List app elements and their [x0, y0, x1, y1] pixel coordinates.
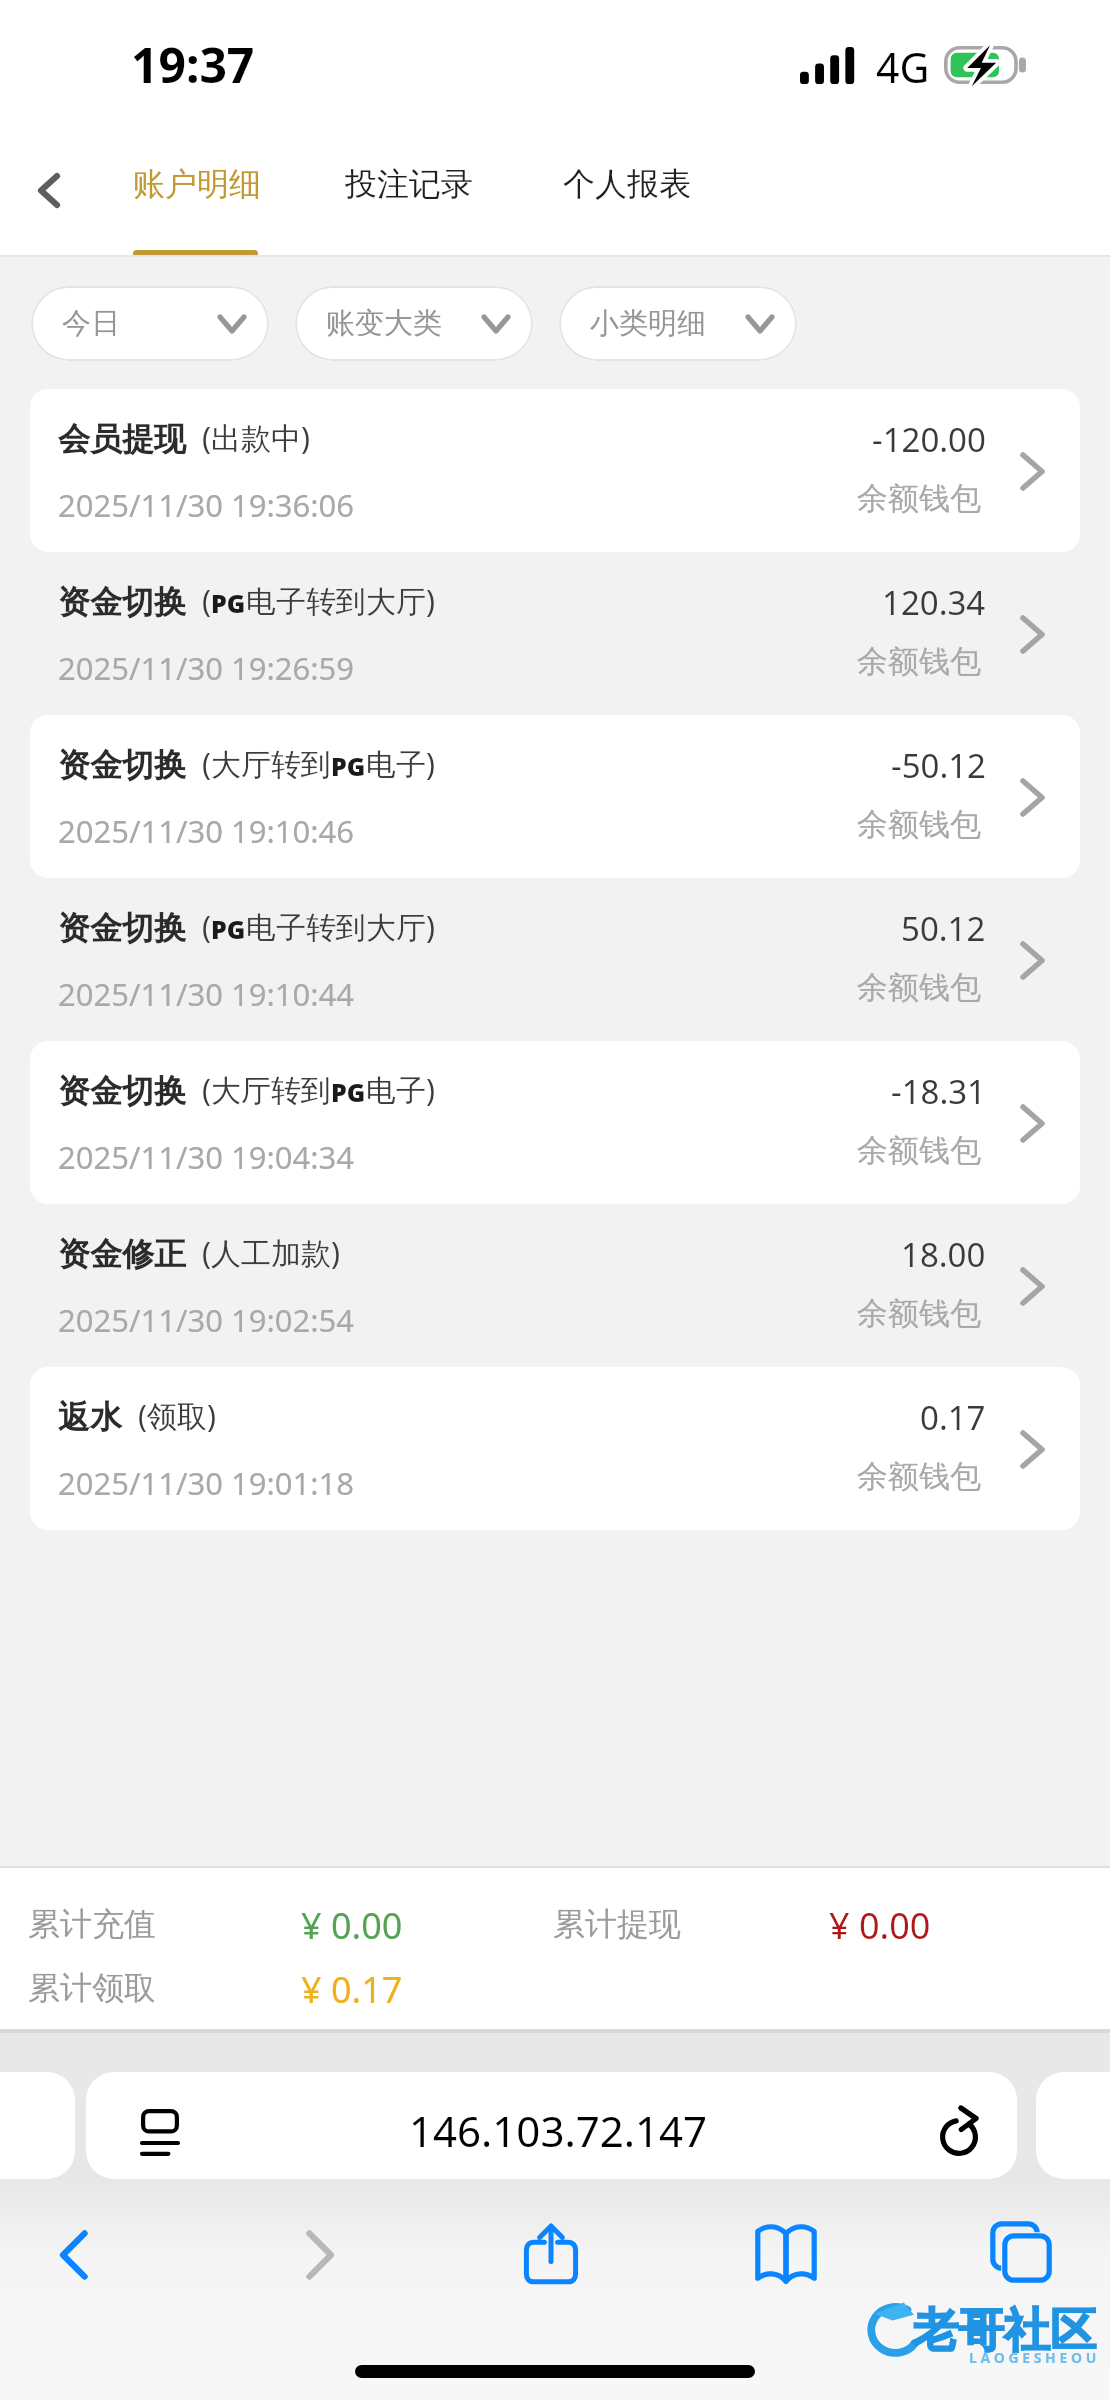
staticText: 19:37	[131, 32, 255, 97]
staticText: 电子转到大厅)	[246, 906, 435, 947]
button[interactable]: 会员提现	[30, 389, 1080, 552]
staticText: 资金切换	[58, 582, 186, 622]
staticText: 2025/11/30 19:36:06	[58, 484, 354, 526]
staticText: 累计领取	[28, 1968, 156, 2008]
staticText: 累计充值	[28, 1904, 156, 1944]
staticText: 18.00	[901, 1232, 986, 1277]
staticText: PG	[331, 749, 366, 783]
staticText: ¥ 0.17	[301, 1965, 403, 2014]
staticText: (出款中)	[202, 417, 310, 458]
staticText: 电子)	[366, 743, 435, 784]
staticText: PG	[331, 1075, 366, 1109]
staticText: 0.17	[920, 1395, 986, 1440]
staticText: -50.12	[891, 743, 986, 788]
button[interactable]: Bookmarks	[731, 2198, 841, 2308]
staticText: 120.34	[882, 580, 986, 625]
button[interactable]: Tabs	[966, 2197, 1076, 2307]
staticText: 电子)	[366, 1069, 435, 1110]
staticText: 账户明细	[133, 164, 261, 204]
staticText: 146.103.72.147	[409, 2102, 708, 2159]
staticText: ¥ 0.00	[829, 1901, 931, 1950]
staticText: (	[202, 906, 211, 947]
staticText: (	[202, 580, 211, 621]
staticText: PG	[211, 586, 246, 620]
staticText: 个人报表	[563, 164, 691, 204]
button[interactable]: 资金切换	[30, 1041, 1080, 1204]
staticText: 余额钱包	[857, 1131, 981, 1170]
button[interactable]: 资金切换	[30, 552, 1080, 715]
staticText: 资金切换	[58, 745, 186, 785]
button[interactable]: 资金切换	[30, 878, 1080, 1041]
button[interactable]: 小类明细	[559, 286, 797, 361]
button[interactable]: Page settings	[86, 2072, 1017, 2179]
staticText: -120.00	[872, 417, 986, 462]
staticText: 2025/11/30 19:10:44	[58, 973, 354, 1015]
button[interactable]: 投注记录	[325, 132, 489, 255]
staticText: 资金切换	[58, 908, 186, 948]
staticText: ¥ 0.00	[301, 1901, 403, 1950]
staticText: 电子转到大厅)	[246, 580, 435, 621]
staticText: 资金切换	[58, 1071, 186, 1111]
button[interactable]: Forward	[264, 2200, 374, 2310]
staticText: PG	[211, 912, 246, 946]
staticText: 账变大类	[326, 305, 442, 342]
button[interactable]: Share	[496, 2198, 606, 2308]
staticText: 2025/11/30 19:10:46	[58, 810, 354, 852]
button[interactable]: 返水	[30, 1367, 1080, 1530]
staticText: 老哥社区	[912, 2302, 1096, 2360]
button[interactable]: Reload	[924, 2094, 986, 2156]
staticText: 2025/11/30 19:01:18	[58, 1462, 354, 1504]
button[interactable]: Page settings	[126, 2096, 188, 2158]
staticText: 余额钱包	[857, 1457, 981, 1496]
button[interactable]: Back	[20, 2200, 130, 2310]
staticText: 资金修正	[58, 1234, 186, 1274]
staticText: (大厅转到	[202, 1069, 331, 1110]
staticText: 50.12	[901, 906, 986, 951]
staticText: -18.31	[891, 1069, 986, 1114]
button[interactable]: 账户明细	[113, 132, 277, 255]
button[interactable]: 今日	[31, 286, 269, 361]
staticText: 余额钱包	[857, 642, 981, 681]
button[interactable]: 资金修正	[30, 1204, 1080, 1367]
button[interactable]: 个人报表	[543, 132, 707, 255]
staticText: 累计提现	[553, 1904, 681, 1944]
staticText: 余额钱包	[857, 805, 981, 844]
staticText: 会员提现	[58, 419, 186, 459]
staticText: (领取)	[138, 1395, 216, 1436]
staticText: 余额钱包	[857, 968, 981, 1007]
staticText: (大厅转到	[202, 743, 331, 784]
staticText: 投注记录	[345, 164, 473, 204]
button[interactable]: 资金切换	[30, 715, 1080, 878]
button[interactable]: 账变大类	[295, 286, 533, 361]
staticText: 2025/11/30 19:04:34	[58, 1136, 354, 1178]
staticText: 2025/11/30 19:02:54	[58, 1299, 354, 1341]
button[interactable]: Back	[0, 132, 110, 255]
staticText: 4G	[876, 39, 930, 95]
staticText: 返水	[58, 1397, 122, 1437]
staticText: 余额钱包	[857, 479, 981, 518]
staticText: 今日	[62, 305, 120, 342]
staticText: 2025/11/30 19:26:59	[58, 647, 354, 689]
staticText: 余额钱包	[857, 1294, 981, 1333]
staticText: (人工加款)	[202, 1232, 340, 1273]
staticText: L A O G E S H E O U	[969, 2348, 1097, 2367]
staticText: 小类明细	[590, 305, 706, 342]
